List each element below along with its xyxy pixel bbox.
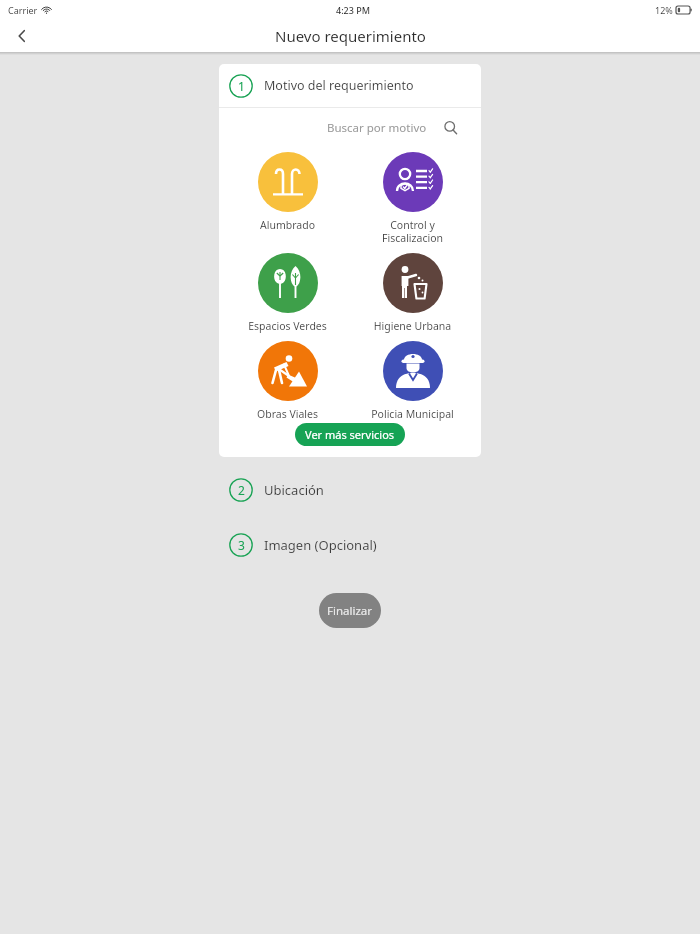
staticText: Alumbrado — [235, 218, 340, 232]
staticText: Imagen (Opcional) — [264, 536, 377, 554]
button[interactable]: Finalizar — [319, 593, 381, 628]
staticText: Buscar por motivo — [327, 120, 427, 136]
button[interactable]: Control y Fiscalizacion — [360, 152, 465, 245]
button[interactable]: 2 — [219, 478, 481, 502]
staticText: 1 — [238, 78, 245, 94]
other: Search — [443, 120, 459, 136]
staticText: Control y Fiscalizacion — [360, 218, 465, 245]
staticText: Espacios Verdes — [235, 319, 340, 333]
staticText: Ubicación — [264, 481, 324, 499]
staticText: Nuevo requerimiento — [275, 26, 426, 46]
button[interactable]: 3 — [219, 533, 481, 557]
staticText: 3 — [238, 537, 245, 553]
staticText: Motivo del requerimiento — [264, 77, 414, 94]
button[interactable]: Buscar por motivo — [327, 120, 459, 136]
staticText: Obras Viales — [235, 407, 340, 421]
staticText: 12% — [655, 4, 673, 16]
button[interactable]: Policia Municipal — [360, 341, 465, 421]
button[interactable]: Alumbrado — [235, 152, 340, 232]
staticText: Carrier — [8, 4, 38, 16]
button[interactable]: Ver más servicios — [295, 423, 405, 446]
staticText: Policia Municipal — [360, 407, 465, 421]
staticText: 2 — [238, 482, 245, 498]
button[interactable]: Obras Viales — [235, 341, 340, 421]
staticText: Ver más servicios — [305, 427, 395, 442]
button[interactable]: Higiene Urbana — [360, 253, 465, 333]
staticText: Finalizar — [327, 603, 373, 619]
staticText: Higiene Urbana — [360, 319, 465, 333]
button[interactable]: Back — [0, 20, 44, 52]
button[interactable]: Espacios Verdes — [235, 253, 340, 333]
staticText: 4:23 PM — [336, 4, 370, 16]
